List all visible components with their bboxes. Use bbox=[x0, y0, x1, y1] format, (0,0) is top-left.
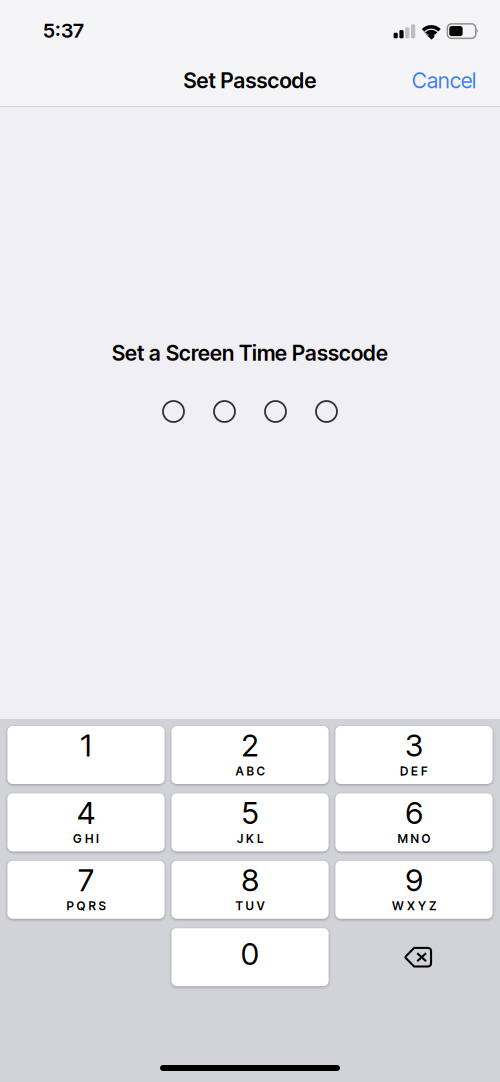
button[interactable]: Cancel bbox=[402, 57, 486, 104]
button[interactable]: 5 bbox=[171, 793, 329, 851]
staticText: G H I bbox=[73, 831, 99, 846]
staticText: M N O bbox=[397, 831, 430, 846]
staticText: T U V bbox=[235, 899, 264, 913]
button[interactable]: 2 bbox=[171, 726, 329, 784]
staticText: 5:37 bbox=[43, 18, 84, 43]
staticText: D E F bbox=[400, 764, 428, 778]
staticText: A B C bbox=[235, 764, 264, 778]
button[interactable]: 9 bbox=[335, 861, 493, 919]
button[interactable]: Delete bbox=[335, 928, 493, 986]
staticText: J K L bbox=[237, 831, 263, 846]
button[interactable]: 0 bbox=[171, 928, 329, 986]
staticText: W X Y Z bbox=[392, 899, 436, 913]
staticText: 7 bbox=[78, 862, 94, 899]
staticText: 5 bbox=[241, 794, 258, 831]
staticText: 2 bbox=[241, 727, 258, 764]
staticText: Cancel bbox=[412, 68, 476, 93]
button[interactable]: 6 bbox=[335, 793, 493, 851]
button[interactable]: 7 bbox=[7, 861, 165, 919]
staticText: 4 bbox=[77, 794, 95, 831]
staticText: 0 bbox=[241, 935, 259, 972]
staticText: Set Passcode bbox=[183, 68, 316, 93]
button[interactable]: 3 bbox=[335, 726, 493, 784]
staticText: P Q R S bbox=[66, 899, 105, 913]
staticText: 3 bbox=[405, 727, 423, 764]
staticText: 1 bbox=[80, 727, 91, 764]
staticText: 8 bbox=[241, 862, 258, 899]
staticText: Set a Screen Time Passcode bbox=[112, 340, 388, 366]
staticText: 6 bbox=[405, 794, 422, 831]
staticText: 9 bbox=[405, 862, 422, 899]
button[interactable]: 8 bbox=[171, 861, 329, 919]
button[interactable]: 4 bbox=[7, 793, 165, 851]
button[interactable]: 1 bbox=[7, 726, 165, 784]
